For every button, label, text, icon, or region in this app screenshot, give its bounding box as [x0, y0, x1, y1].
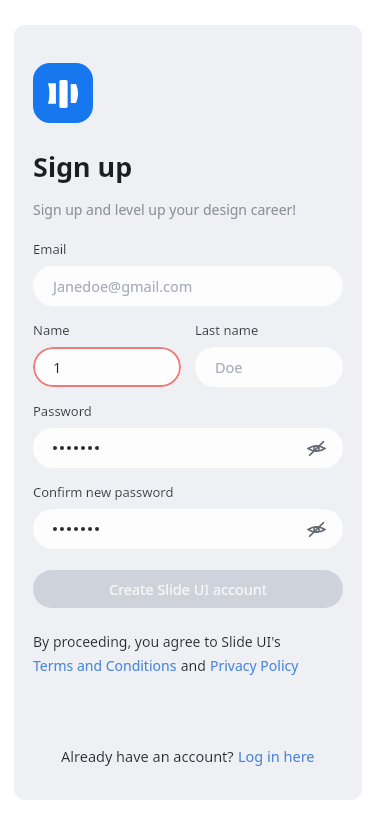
button[interactable]: Show password: [33, 509, 343, 549]
button[interactable]: Log in here: [238, 746, 315, 766]
staticText: By proceeding, you agree to Slide UI's: [33, 632, 281, 651]
staticText: Janedoe@gmail.com: [53, 276, 193, 296]
staticText: Last name: [195, 321, 259, 339]
button[interactable]: Terms and Conditions: [33, 656, 177, 675]
staticText: Name: [33, 321, 70, 339]
staticText: Password: [33, 402, 92, 420]
staticText: Privacy Policy: [210, 656, 299, 675]
staticText: Sign up and level up your design career!: [33, 200, 297, 219]
button[interactable]: Create Slide UI account: [33, 570, 343, 608]
button[interactable]: Show password: [33, 428, 343, 468]
staticText: Email: [33, 240, 67, 258]
staticText: Already have an account?: [61, 746, 238, 766]
staticText: Log in here: [238, 746, 315, 766]
button[interactable]: Show password: [303, 516, 329, 542]
button[interactable]: 1: [33, 347, 181, 387]
staticText: Create Slide UI account: [109, 579, 267, 599]
staticText: Terms and Conditions: [33, 656, 177, 675]
staticText: Sign up: [33, 148, 133, 185]
button[interactable]: Doe: [195, 347, 343, 387]
button[interactable]: Show password: [303, 435, 329, 461]
staticText: and: [177, 656, 210, 675]
button[interactable]: Janedoe@gmail.com: [33, 266, 343, 306]
staticText: Doe: [215, 357, 243, 377]
staticText: Confirm new password: [33, 483, 174, 501]
button[interactable]: Privacy Policy: [210, 656, 299, 675]
staticText: 1: [53, 357, 62, 377]
